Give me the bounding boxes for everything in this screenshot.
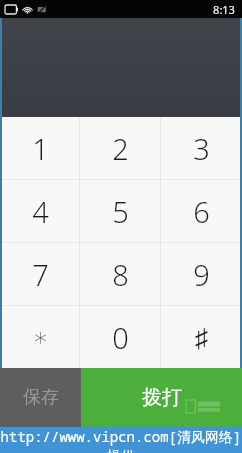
staticText: 8:13 (213, 2, 235, 17)
button[interactable]: 9 (161, 243, 242, 305)
staticText: 3 (193, 129, 210, 168)
button[interactable]: 1 (0, 117, 80, 179)
staticText: 8 (112, 255, 129, 294)
staticText: http://www.vipcn.com[清风网络]提供 (0, 427, 242, 453)
staticText: 0 (112, 318, 129, 357)
staticText: ♯ (195, 323, 208, 352)
staticText: 保存 (23, 386, 59, 409)
staticText: ∗ (32, 322, 49, 352)
button[interactable]: 3 (161, 117, 242, 179)
button[interactable]: 7 (0, 243, 80, 305)
button[interactable]: ♯ (161, 306, 242, 368)
staticText: 1 (32, 129, 49, 168)
staticText: 2 (112, 129, 129, 168)
button[interactable]: 4 (0, 180, 80, 242)
button[interactable]: 5 (80, 180, 161, 242)
button[interactable]: 6 (161, 180, 242, 242)
button[interactable]: 0 (80, 306, 161, 368)
staticText: 拨打 (142, 385, 182, 410)
button[interactable]: ∗ (0, 306, 80, 368)
button[interactable]: 拨打 (81, 368, 242, 427)
staticText: 9 (193, 255, 210, 294)
staticText: 6 (193, 192, 210, 231)
button[interactable]: 2 (80, 117, 161, 179)
staticText: 4 (32, 192, 49, 231)
staticText: 7 (32, 255, 49, 294)
staticText: 5 (112, 192, 129, 231)
button[interactable]: 8 (80, 243, 161, 305)
button[interactable]: 保存 (0, 368, 81, 427)
